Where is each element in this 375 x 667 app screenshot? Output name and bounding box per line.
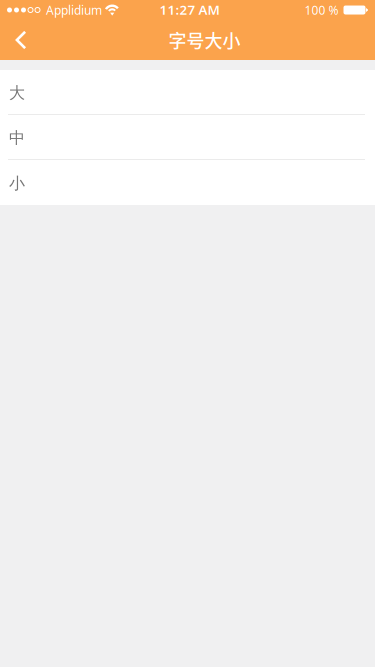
staticText: 中 [9, 128, 25, 148]
staticText: 大 [9, 83, 25, 103]
staticText: Applidium [46, 2, 102, 18]
button[interactable]: 中 [0, 115, 375, 160]
staticText: 100 % [304, 2, 338, 18]
staticText: 小 [9, 174, 25, 193]
staticText: 11:27 AM [159, 1, 219, 18]
button[interactable]: Back [0, 20, 42, 60]
button[interactable]: 大 [0, 70, 375, 115]
staticText: 字号大小 [168, 27, 240, 53]
button[interactable]: 小 [0, 160, 375, 205]
